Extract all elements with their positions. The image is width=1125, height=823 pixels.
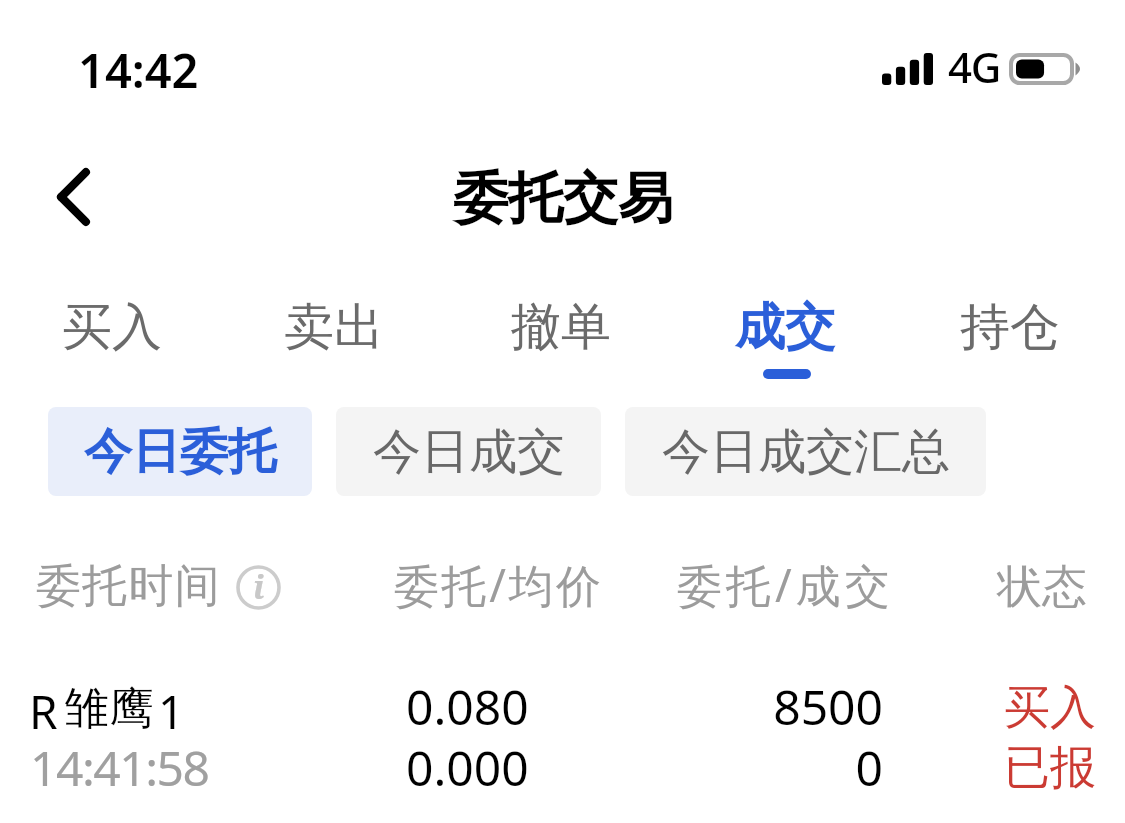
staticText: 0.080 xyxy=(406,674,529,739)
button[interactable]: R xyxy=(0,655,1125,823)
staticText: 成交 xyxy=(735,296,835,359)
staticText: 雏鹰 xyxy=(64,681,154,736)
button[interactable]: 今日成交汇总 xyxy=(625,407,986,496)
button[interactable]: 买入 xyxy=(2,278,222,390)
staticText: 委托/均价 xyxy=(394,554,604,615)
staticText: 买入 xyxy=(62,296,162,359)
staticText: 0.000 xyxy=(406,735,529,800)
staticText: 0 xyxy=(660,735,883,800)
staticText: 委托时间 xyxy=(36,558,222,615)
button[interactable]: 卖出 xyxy=(224,278,444,390)
staticText: 委托/成交 xyxy=(677,554,894,615)
staticText: 卖出 xyxy=(284,296,384,359)
button[interactable]: 今日成交 xyxy=(336,407,601,496)
staticText: 14:41:58 xyxy=(30,735,209,800)
staticText: 今日成交 xyxy=(373,422,565,482)
button[interactable]: Back xyxy=(24,146,122,248)
button[interactable]: 撤单 xyxy=(451,278,671,390)
staticText: 今日委托 xyxy=(84,422,276,482)
staticText: 8500 xyxy=(660,674,883,739)
staticText: 4G xyxy=(948,38,1001,95)
staticText: 撤单 xyxy=(511,296,611,359)
staticText: 委托交易 xyxy=(453,164,673,233)
button[interactable]: 持仓 xyxy=(900,278,1120,390)
staticText: R xyxy=(29,680,58,743)
staticText: 持仓 xyxy=(960,296,1060,359)
staticText: 1 xyxy=(158,680,185,743)
staticText: 状态 xyxy=(997,559,1087,616)
button[interactable]: 今日委托 xyxy=(48,407,312,496)
staticText: 14:42 xyxy=(78,38,199,102)
button[interactable]: Info xyxy=(236,565,281,610)
staticText: i xyxy=(253,565,265,609)
staticText: 买入 xyxy=(1004,679,1096,737)
staticText: 已报 xyxy=(1004,739,1096,797)
button[interactable]: 成交 xyxy=(675,278,895,390)
staticText: 今日成交汇总 xyxy=(662,422,950,482)
